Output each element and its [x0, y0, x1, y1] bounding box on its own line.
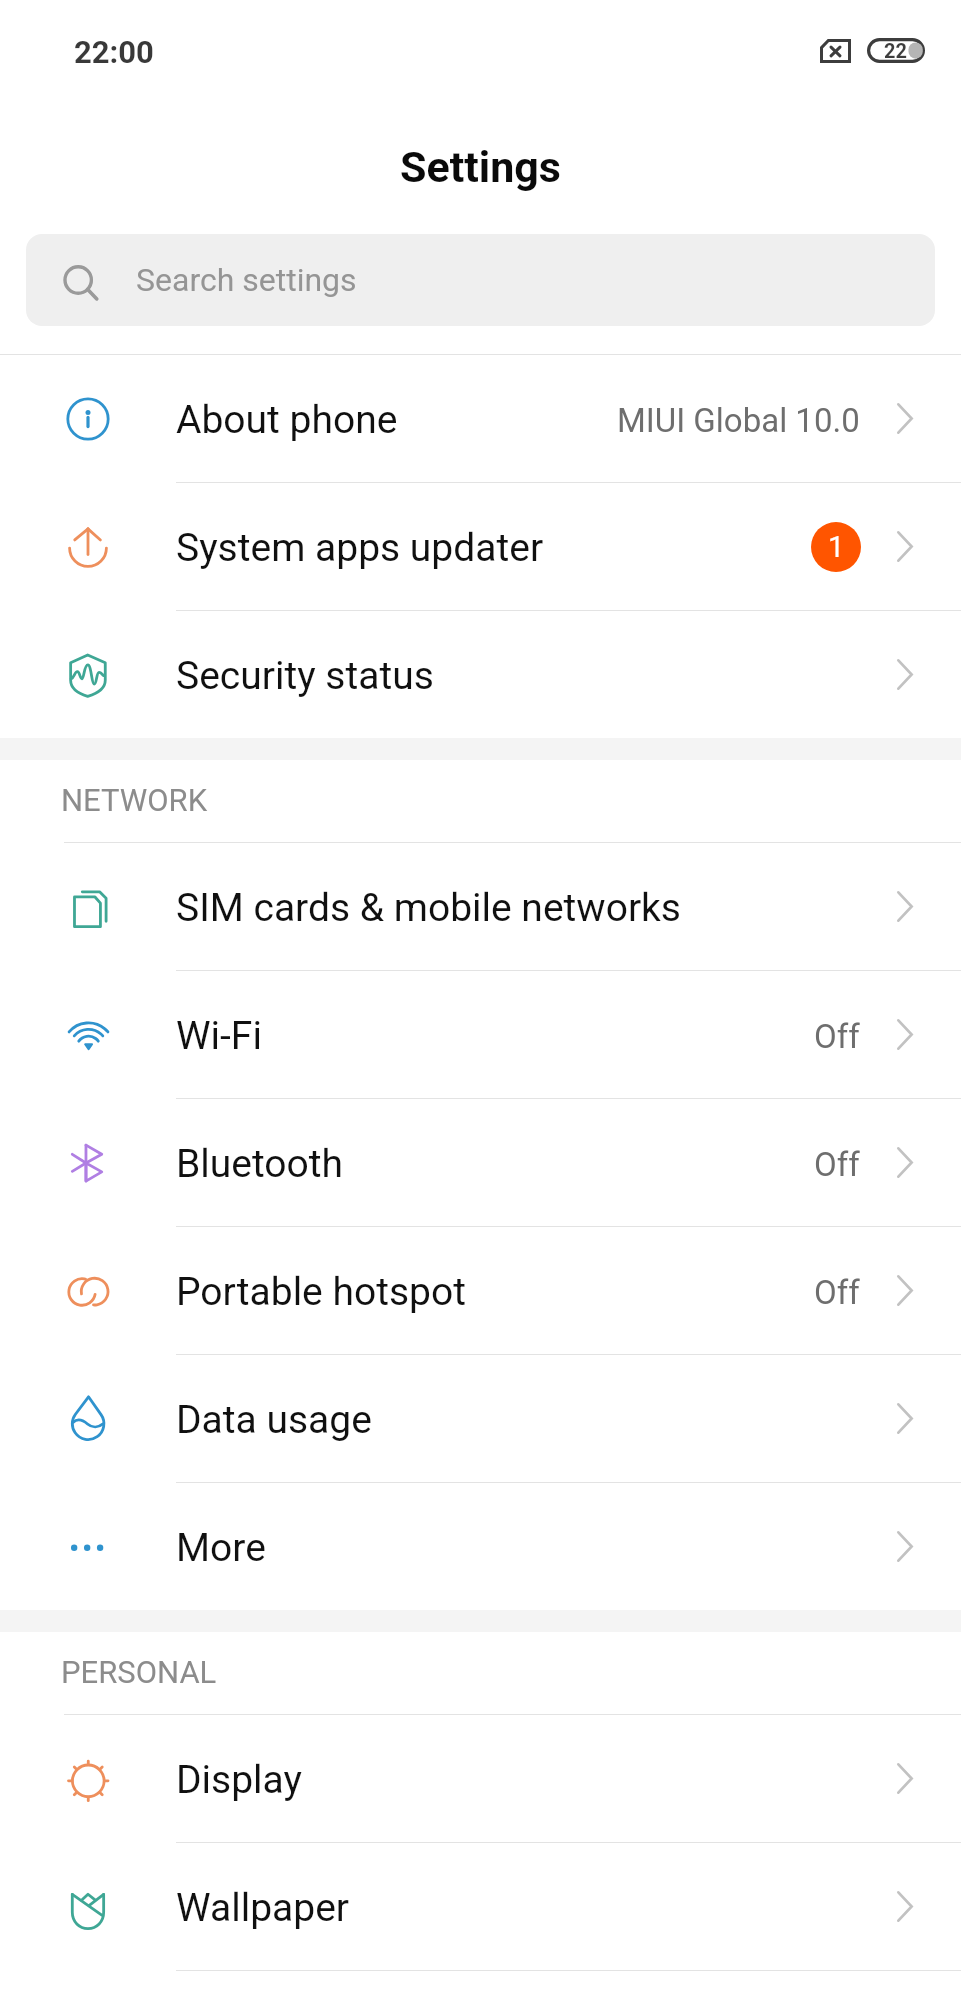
staticText: PERSONAL [61, 1654, 217, 1690]
staticText: Off [814, 1145, 860, 1184]
button[interactable]: About phone [0, 355, 961, 482]
staticText: Settings [400, 142, 561, 192]
staticText: Wallpaper [176, 1885, 350, 1931]
staticText: SIM cards & mobile networks [176, 885, 682, 931]
staticText: Bluetooth [176, 1141, 344, 1187]
button[interactable]: Security status [0, 611, 961, 738]
staticText: Off [814, 1017, 860, 1056]
button[interactable]: Wallpaper [0, 1843, 961, 1970]
staticText: NETWORK [61, 782, 208, 818]
button[interactable]: Data usage [0, 1355, 961, 1482]
staticText: Portable hotspot [176, 1269, 466, 1315]
staticText: 1 [828, 530, 845, 564]
staticText: Display [176, 1757, 302, 1803]
staticText: Search settings [136, 261, 357, 299]
staticText: Wi-Fi [176, 1013, 262, 1059]
other: No SIM card [820, 39, 851, 63]
staticText: 22:00 [74, 34, 154, 70]
staticText: Off [814, 1273, 860, 1312]
staticText: Security status [176, 653, 434, 699]
button[interactable]: Display [0, 1715, 961, 1842]
button[interactable]: System apps updater [0, 483, 961, 610]
staticText: More [176, 1525, 266, 1571]
staticText: System apps updater [176, 525, 544, 571]
staticText: Data usage [176, 1397, 372, 1443]
staticText: MIUI Global 10.0 [617, 401, 860, 440]
button[interactable]: More [0, 1483, 961, 1610]
button[interactable]: Wi-Fi [0, 971, 961, 1098]
staticText: 22 [884, 39, 907, 62]
other: Battery 22 percent [867, 38, 925, 63]
button[interactable]: SIM cards & mobile networks [0, 843, 961, 970]
button[interactable]: Search settings [26, 234, 935, 326]
button[interactable]: Bluetooth [0, 1099, 961, 1226]
staticText: About phone [176, 397, 398, 443]
button[interactable]: Portable hotspot [0, 1227, 961, 1354]
